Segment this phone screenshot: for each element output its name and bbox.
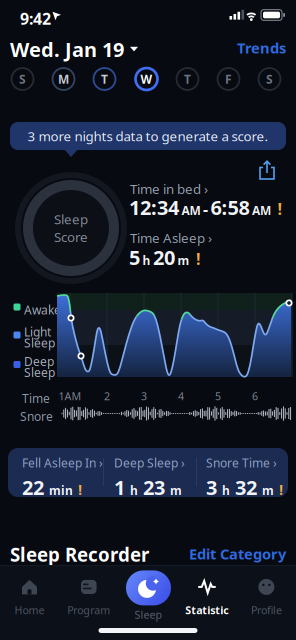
staticText: 3 [141, 389, 147, 403]
staticText: Home [14, 603, 44, 617]
staticText: 2 [104, 389, 110, 403]
button[interactable]: Statistic [185, 579, 229, 617]
button[interactable]: Profile [251, 579, 282, 617]
staticText: Snore Time › [206, 455, 277, 471]
staticText: h [127, 482, 141, 498]
button[interactable]: Fell Asleep In › [22, 455, 103, 500]
staticText: 1AM [58, 389, 81, 403]
staticText: - [203, 198, 208, 219]
button[interactable]: Time in bed › [130, 180, 208, 198]
staticText: ! [273, 198, 282, 219]
staticText: ! [279, 479, 283, 499]
staticText: Sleep [24, 335, 55, 351]
staticText: 3 more nights data to generate a score. [27, 127, 268, 145]
button[interactable]: Deep Sleep › [114, 455, 185, 500]
staticText: Deep [24, 353, 54, 369]
button[interactable]: T [92, 66, 117, 91]
button[interactable] [259, 160, 275, 180]
button[interactable]: Time Asleep › [130, 229, 212, 247]
staticText: 6:58 [210, 194, 249, 221]
staticText: m [177, 252, 189, 268]
staticText: Sleep [134, 607, 162, 622]
staticText: ! [192, 248, 201, 269]
staticText: Score [54, 228, 88, 246]
staticText: 4 [178, 389, 184, 403]
staticText: Snore [20, 408, 53, 424]
staticText: 5 [129, 244, 140, 271]
staticText: Awake [24, 302, 61, 318]
staticText: Time in bed › [130, 180, 208, 198]
staticText: T [101, 71, 108, 87]
staticText: 3 [206, 474, 217, 500]
staticText: m [167, 482, 185, 498]
staticText: Sleep Recorder [10, 542, 149, 567]
staticText: Statistic [185, 603, 229, 617]
staticText: h [142, 252, 150, 268]
button[interactable]: Snore Time › [206, 455, 283, 500]
staticText: Profile [251, 603, 282, 617]
staticText: Edit Category [189, 544, 286, 563]
staticText: Sleep [54, 210, 88, 228]
staticText: Deep Sleep › [114, 455, 185, 471]
staticText: min [46, 482, 76, 498]
staticText: Time Asleep › [130, 229, 212, 247]
staticText: M [58, 71, 69, 87]
staticText: T [184, 71, 191, 87]
staticText: Program [67, 603, 110, 617]
staticText: Trends [237, 38, 286, 57]
button[interactable]: W [134, 66, 159, 91]
staticText: 22 [22, 474, 44, 500]
staticText: Wed. Jan 19 [10, 36, 124, 63]
button[interactable]: Home [14, 579, 44, 617]
staticText: AM [181, 202, 200, 218]
staticText: Fell Asleep In › [22, 455, 103, 471]
button[interactable]: S [257, 66, 282, 91]
button[interactable]: Wed. Jan 19 [10, 36, 138, 63]
staticText: Sleep [24, 364, 55, 380]
button[interactable]: T [175, 66, 200, 91]
button[interactable]: S [10, 66, 35, 91]
button[interactable]: M [51, 66, 76, 91]
button[interactable]: Trends [0, 38, 296, 57]
staticText: 12:34 [129, 194, 179, 221]
button[interactable]: Program [67, 579, 110, 617]
staticText: 32 [235, 474, 257, 500]
button[interactable]: Sleep [126, 570, 171, 622]
staticText: 23 [143, 474, 165, 500]
staticText: h [219, 482, 233, 498]
button[interactable]: F [216, 66, 241, 91]
staticText: Light [24, 324, 51, 340]
staticText: F [225, 71, 232, 87]
staticText: W [140, 71, 152, 87]
staticText: Time [22, 390, 50, 406]
staticText: 5 [215, 389, 221, 403]
staticText: 9:42 [20, 8, 51, 29]
staticText: AM [252, 202, 271, 218]
staticText: ! [78, 479, 82, 499]
staticText: 6 [252, 389, 258, 403]
staticText: 20 [153, 244, 175, 271]
staticText: 1 [114, 474, 125, 500]
staticText: S [19, 71, 26, 87]
button[interactable]: Edit Category [0, 544, 296, 563]
staticText: m [259, 482, 277, 498]
staticText: S [266, 71, 273, 87]
